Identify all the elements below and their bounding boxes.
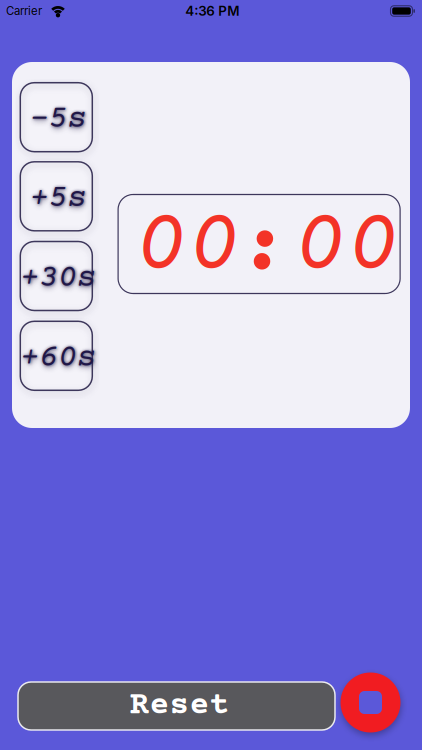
staticText: Reset: [129, 688, 229, 724]
staticText: Carrier: [6, 4, 42, 18]
button[interactable]: +30s: [20, 241, 92, 310]
button[interactable]: +60s: [20, 321, 92, 390]
button[interactable]: -5s: [20, 83, 92, 152]
staticText: +60s: [20, 340, 96, 376]
button[interactable]: Stop: [340, 672, 400, 732]
staticText: +30s: [20, 261, 96, 296]
staticText: +5s: [30, 181, 87, 217]
button[interactable]: +5s: [20, 162, 92, 231]
button[interactable]: Reset: [18, 682, 335, 730]
staticText: 00 00: [134, 198, 399, 298]
staticText: 4:36 PM: [185, 3, 239, 19]
staticText: -5s: [30, 102, 87, 138]
